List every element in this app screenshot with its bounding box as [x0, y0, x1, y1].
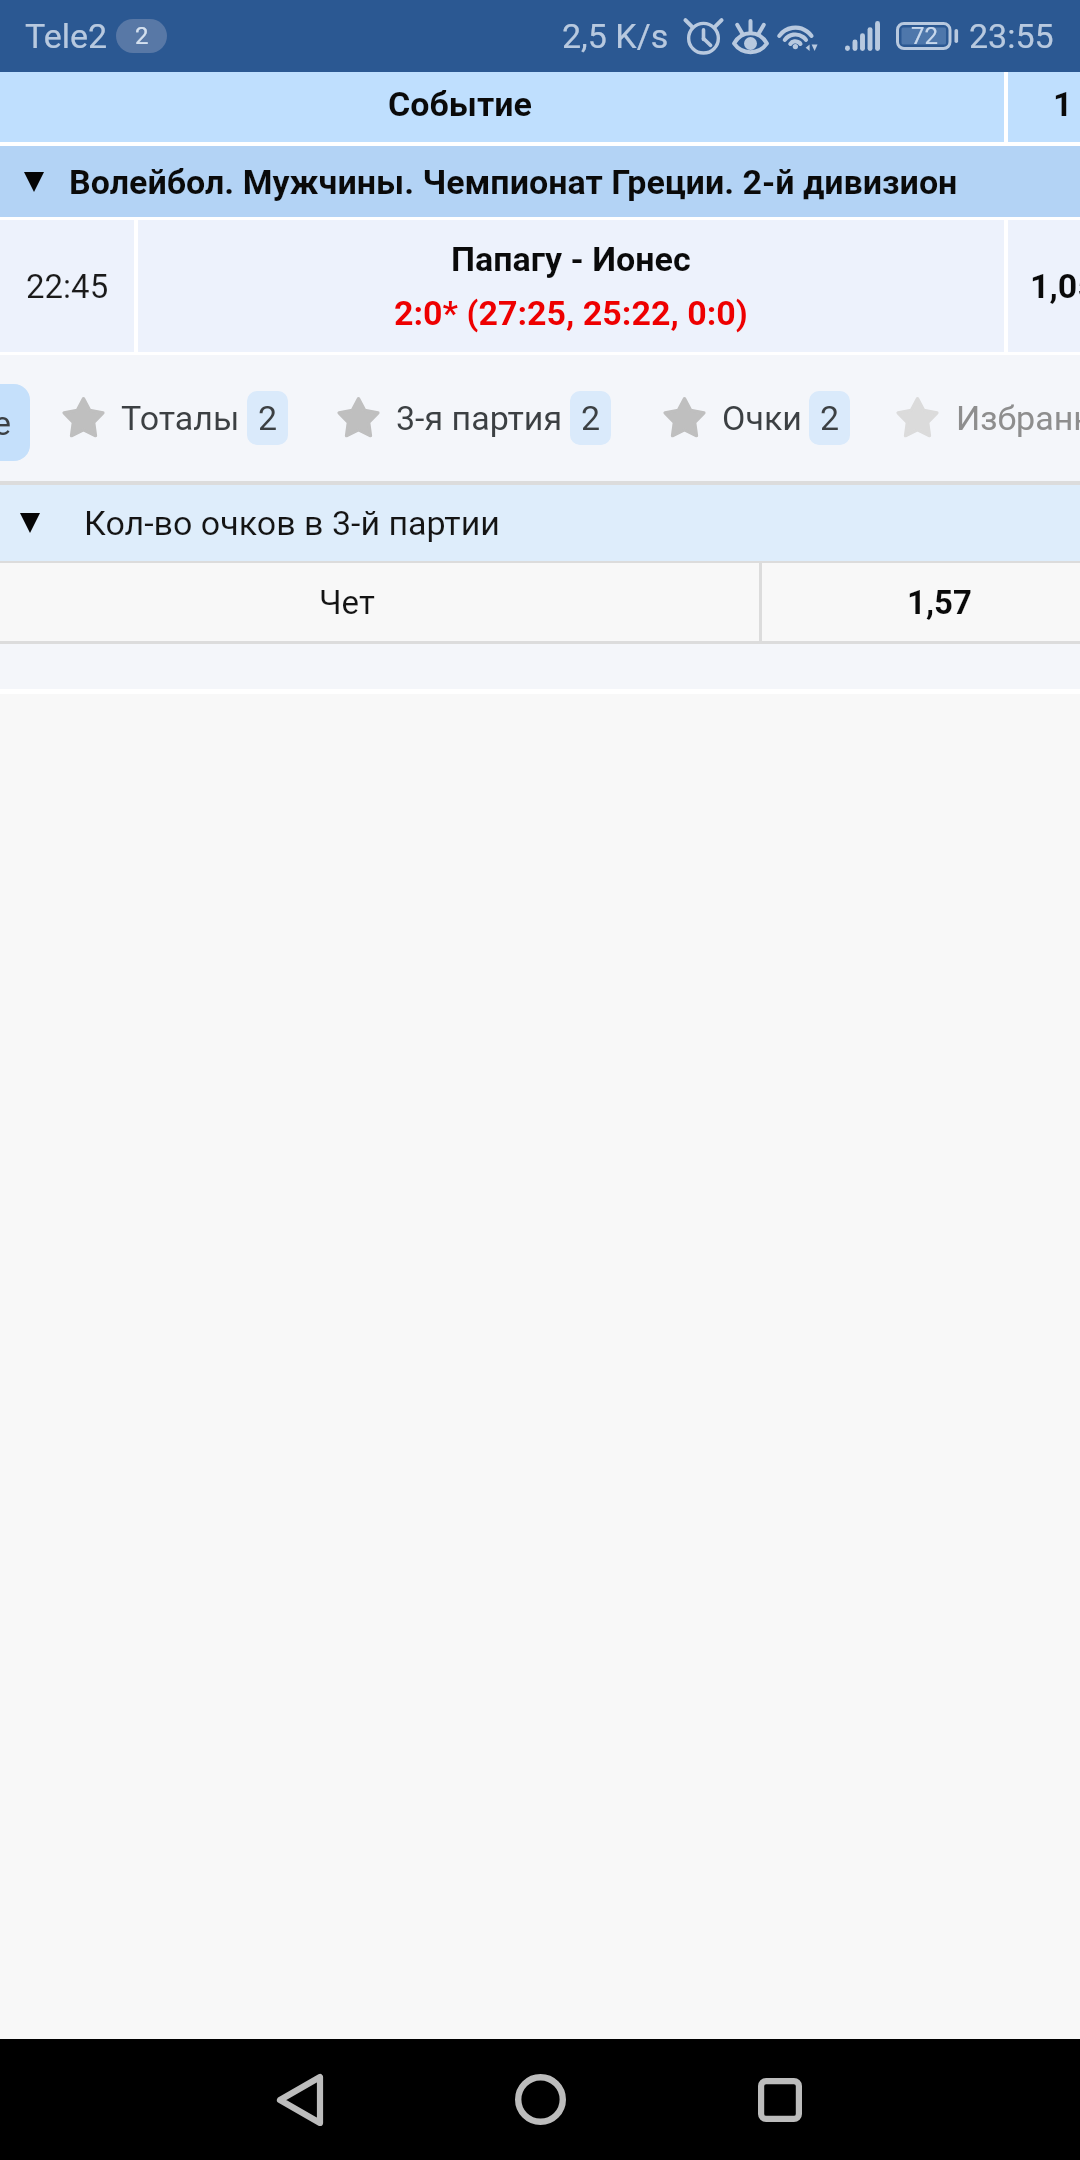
staticText: Tele2: [25, 16, 108, 56]
button[interactable]: 1: [1008, 72, 1080, 142]
button[interactable]: 1,05: [1008, 220, 1080, 352]
staticText: 23:55: [969, 16, 1054, 56]
staticText: Избранн: [956, 398, 1080, 438]
staticText: 2: [258, 398, 278, 438]
staticText: 2: [581, 398, 601, 438]
staticText: 2: [135, 22, 149, 50]
button[interactable]: е: [0, 384, 30, 461]
staticText: 1: [1053, 84, 1073, 124]
staticText: Чет: [319, 583, 375, 622]
staticText: Кол-во очков в 3-й партии: [84, 503, 500, 543]
button[interactable]: Back: [180, 2039, 420, 2160]
staticText: е: [0, 403, 12, 443]
staticText: 2,5 K/s: [562, 16, 669, 56]
button[interactable]: Тоталы: [63, 355, 288, 481]
staticText: 22:45: [26, 267, 109, 306]
staticText: 2: [820, 398, 840, 438]
button[interactable]: 3-я партия: [338, 355, 611, 481]
button[interactable]: Волейбол. Мужчины. Чемпионат Греции. 2-й…: [0, 146, 1080, 217]
staticText: Тоталы: [121, 398, 240, 438]
button[interactable]: 22:45: [0, 220, 134, 352]
staticText: 72: [911, 22, 938, 50]
button[interactable]: Очки: [664, 355, 850, 481]
button[interactable]: Recents: [660, 2039, 900, 2160]
button[interactable]: Избранн: [897, 355, 1080, 481]
button[interactable]: Чет: [0, 563, 759, 641]
button[interactable]: Папагу - Ионес: [138, 220, 1004, 352]
staticText: 2:0* (27:25, 25:22, 0:0): [394, 293, 748, 333]
button[interactable]: Home: [420, 2039, 660, 2160]
staticText: Волейбол. Мужчины. Чемпионат Греции. 2-й…: [69, 162, 958, 202]
staticText: 1,05: [1030, 266, 1080, 306]
button[interactable]: 1,57: [762, 563, 1080, 641]
staticText: 1,57: [907, 583, 972, 622]
staticText: Событие: [388, 84, 532, 124]
staticText: 3-я партия: [396, 398, 563, 438]
staticText: Папагу - Ионес: [451, 239, 691, 279]
button[interactable]: Событие: [0, 72, 1000, 142]
staticText: Очки: [722, 398, 802, 438]
button[interactable]: Кол-во очков в 3-й партии: [0, 485, 1080, 561]
